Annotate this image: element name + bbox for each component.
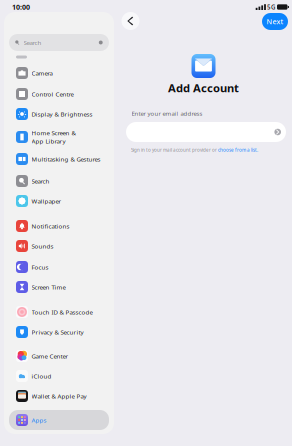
button[interactable]: Camera [9,63,109,83]
button[interactable]: Next [262,13,288,30]
staticText: Game Center [31,352,68,360]
staticText: Search [23,38,41,47]
staticText: Sounds [31,242,53,250]
staticText: Add Account [168,80,239,96]
staticText: Display & Brightness [31,110,92,118]
staticText: 10:00 [12,2,30,12]
button[interactable]: iCloud [9,366,109,386]
button[interactable]: Screen Time [9,277,109,297]
staticText: Wallet & Apple Pay [31,392,86,400]
button[interactable]: Multitasking & Gestures [9,149,109,169]
staticText: iCloud [31,372,51,380]
staticText: App Library [31,137,65,145]
staticText: 5G [267,3,275,11]
staticText: Control Centre [31,90,73,98]
staticText: Wallpaper [31,197,61,205]
button[interactable]: Sounds [9,236,109,256]
button[interactable]: Game Center [9,346,109,366]
button[interactable]: Display & Brightness [9,104,109,124]
staticText: Multitasking & Gestures [31,155,100,163]
button[interactable]: Wallet & Apple Pay [9,386,109,406]
staticText: Next [266,17,283,26]
staticText: Sign in to your mail account provider or [131,147,218,153]
staticText: Privacy & Security [31,328,83,336]
staticText: Screen Time [31,283,65,291]
staticText: Touch ID & Passcode [31,308,92,316]
staticText: choose from a list. [218,147,258,153]
button[interactable]: Wallpaper [9,191,109,211]
button[interactable]: choose from a list. [218,147,258,153]
staticText: Camera [31,69,52,77]
button[interactable]: Home Screen & [9,125,109,148]
button[interactable]: Notifications [9,216,109,236]
button[interactable]: Control Centre [9,84,109,104]
staticText: Focus [31,263,48,271]
staticText: Home Screen & [31,129,75,137]
button[interactable]: Search [9,171,109,191]
button[interactable]: Apps [9,410,109,430]
button[interactable]: Privacy & Security [9,322,109,342]
button[interactable]: Back [121,12,139,30]
staticText: Enter your email address [131,109,202,118]
button[interactable]: Touch ID & Passcode [9,302,109,322]
button[interactable]: Focus [9,257,109,277]
staticText: Search [31,177,49,185]
staticText: Apps [31,416,46,424]
staticText: Notifications [31,222,69,230]
